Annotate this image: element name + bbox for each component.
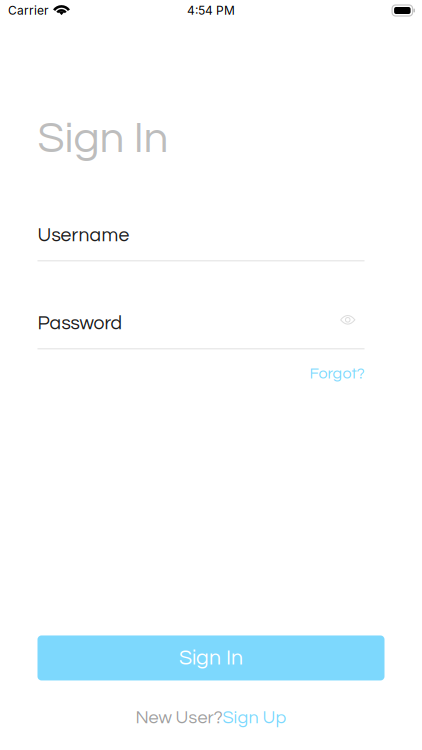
staticText: Forgot?: [309, 365, 364, 382]
staticText: Sign In: [179, 647, 243, 669]
button[interactable]: Sign In: [37, 635, 384, 680]
button[interactable]: Forgot?: [37, 349, 364, 384]
staticText: Sign In: [37, 116, 168, 161]
button[interactable]: New User?: [37, 680, 384, 733]
staticText: 4:54 PM: [187, 3, 235, 18]
staticText: New User?: [135, 708, 222, 727]
staticText: Sign Up: [222, 708, 286, 727]
staticText: Password: [37, 313, 122, 333]
staticText: Username: [37, 225, 129, 245]
button[interactable]: Show password: [340, 313, 364, 334]
staticText: Carrier: [8, 3, 49, 18]
